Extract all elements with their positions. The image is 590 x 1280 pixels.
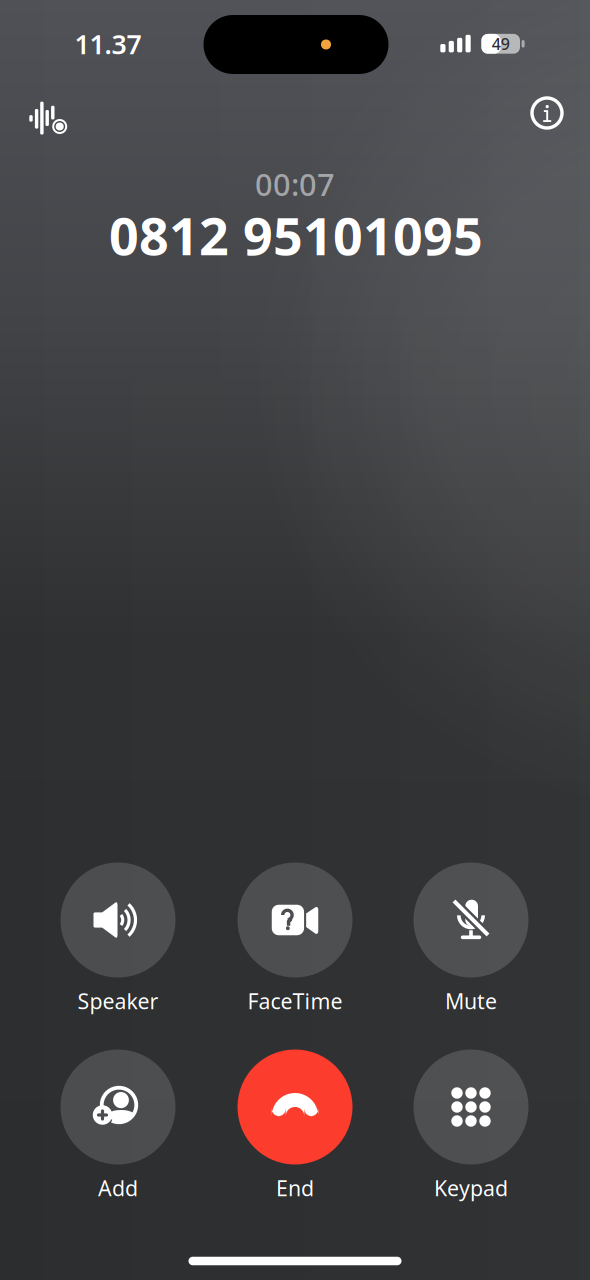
button[interactable]: End [206,1049,383,1230]
button[interactable]: Mute [382,862,559,1043]
staticText: Add [98,1174,138,1202]
button[interactable]: Live voicemail [12,86,84,150]
staticText: 11.37 [74,26,141,62]
staticText: End [276,1174,314,1202]
button[interactable]: Call info [515,81,579,145]
button[interactable]: FaceTime [206,862,383,1043]
staticText: FaceTime [247,987,342,1015]
button[interactable]: Keypad [382,1049,559,1230]
button[interactable]: Speaker [29,862,206,1043]
staticText: 49 [492,33,510,54]
button[interactable]: Add [29,1049,206,1230]
staticText: 00:07 [255,164,335,204]
staticText: Speaker [77,987,158,1015]
staticText: Mute [445,987,497,1015]
staticText: Keypad [434,1174,508,1202]
staticText: 0812 95101095 [109,200,483,270]
